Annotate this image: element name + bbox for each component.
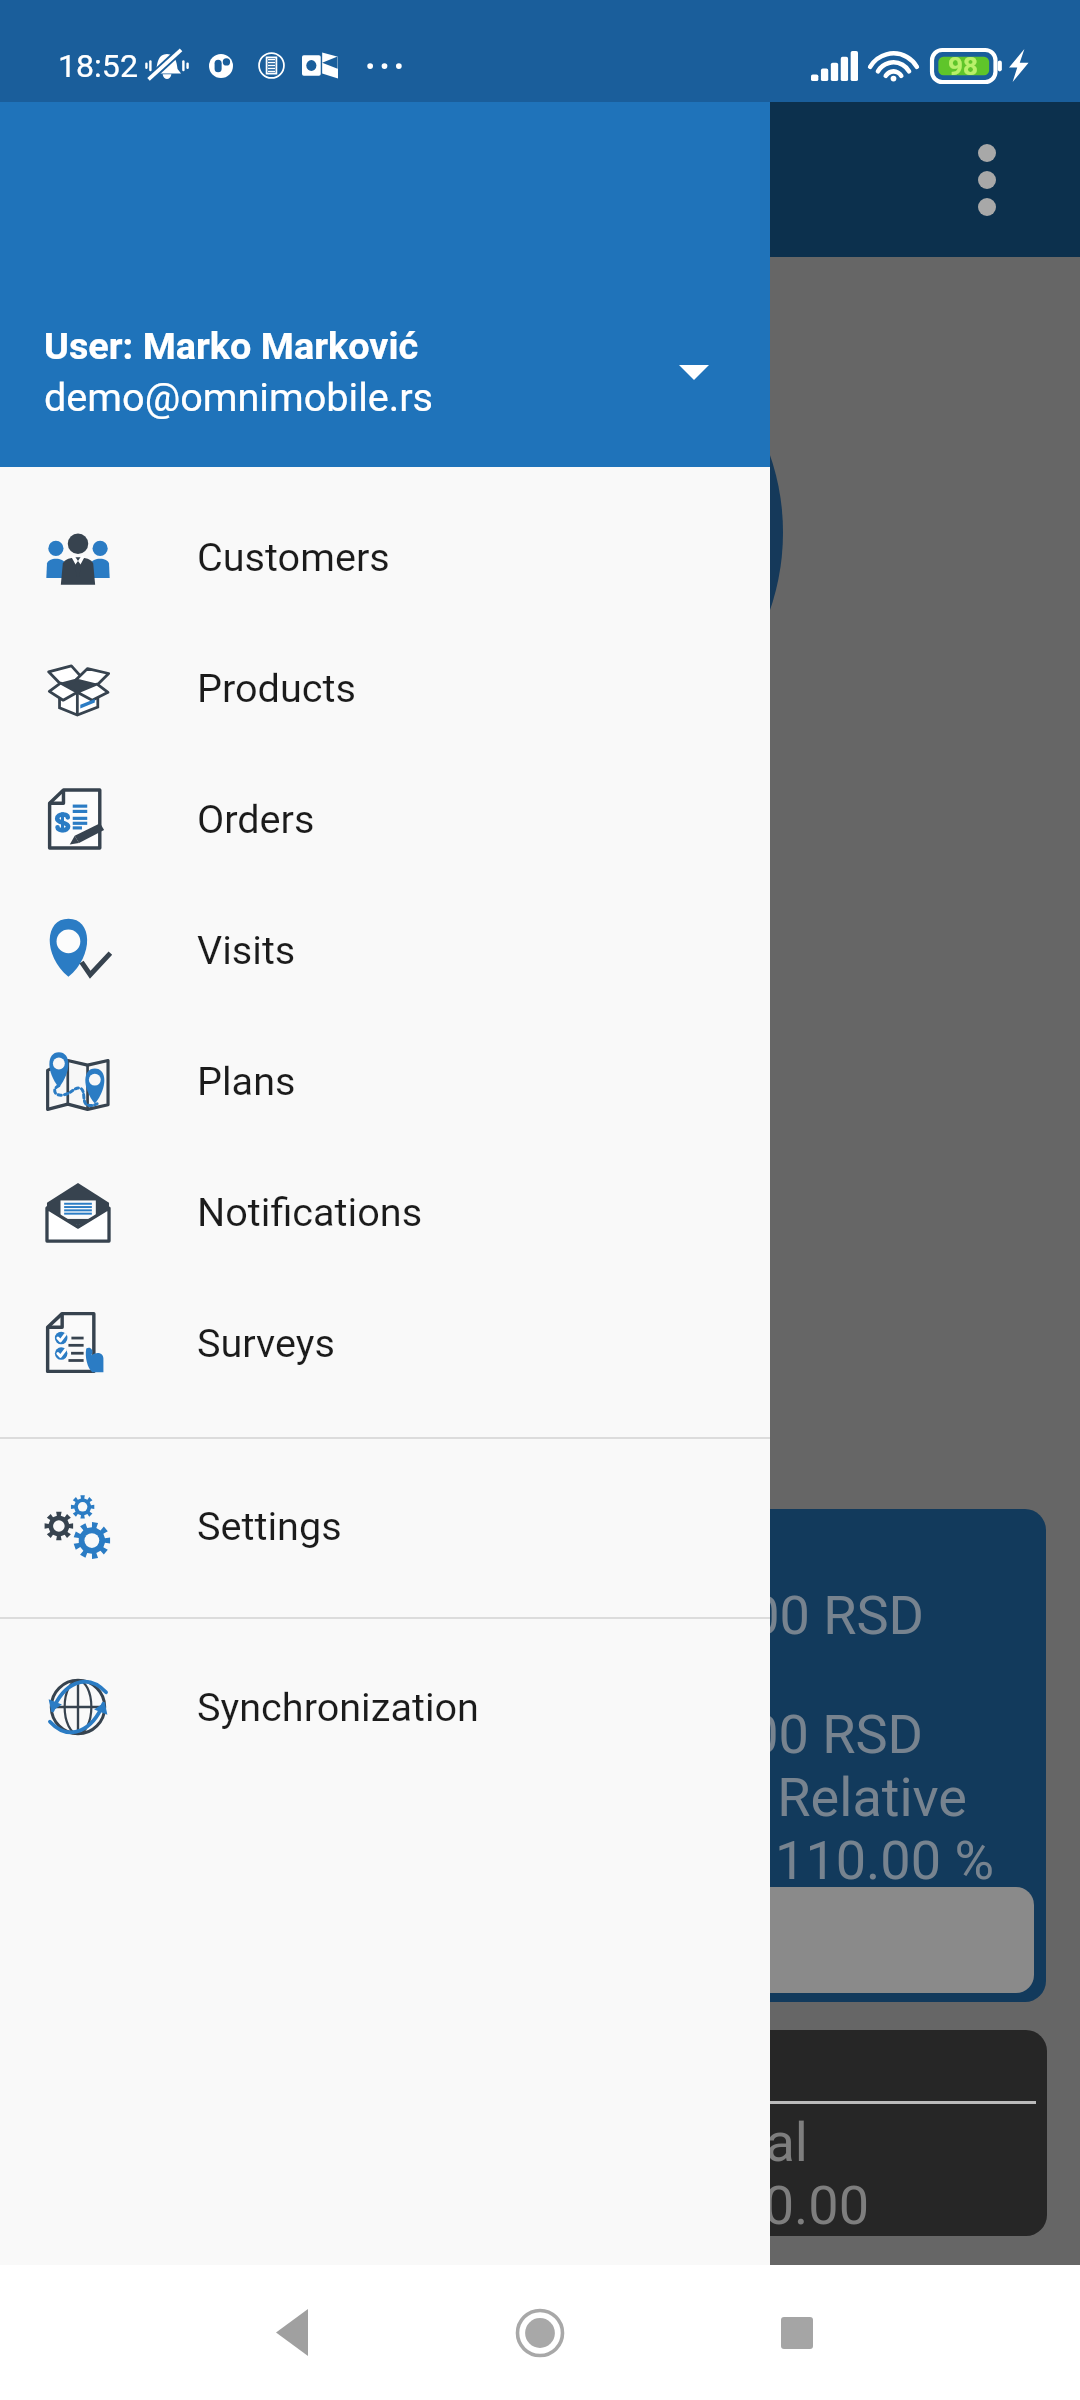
staticText: Relative: [33, 1766, 967, 1829]
staticText: Visits: [197, 927, 296, 973]
button[interactable]: More options: [918, 111, 1056, 249]
staticText: User: Marko Marković: [44, 324, 419, 368]
button[interactable]: Orders: [0, 753, 770, 884]
button[interactable]: Plans: [0, 1015, 770, 1146]
staticText: 1,000.00 RSD: [33, 1584, 924, 1647]
staticText: Total: [33, 2111, 808, 2174]
button[interactable]: Visits: [0, 884, 770, 1015]
button[interactable]: Synchronization: [0, 1641, 770, 1772]
staticText: Synchronization: [197, 1684, 479, 1730]
staticText: Customers: [197, 534, 390, 580]
staticText: Surveys: [197, 1320, 335, 1366]
button[interactable]: Back: [247, 2283, 337, 2382]
button[interactable]: Recents: [752, 2283, 842, 2382]
staticText: Notifications: [197, 1189, 423, 1235]
button[interactable]: Notifications: [0, 1146, 770, 1277]
staticText: Settings: [197, 1503, 342, 1549]
button[interactable]: Settings: [0, 1460, 770, 1591]
button[interactable]: User: Marko Marković: [0, 0, 770, 467]
staticText: 1,100.00 RSD: [33, 1703, 923, 1766]
staticText: Orders: [197, 796, 315, 842]
staticText: Products: [197, 665, 356, 711]
staticText: 110.00 %: [33, 1829, 994, 1892]
button[interactable]: Surveys: [0, 1277, 770, 1408]
button[interactable]: Home: [492, 2283, 588, 2382]
staticText: 98: [948, 51, 978, 82]
staticText: demo@omnimobile.rs: [44, 374, 434, 420]
button[interactable]: Customers: [0, 491, 770, 622]
staticText: 18:52: [58, 47, 138, 85]
staticText: 0.00: [33, 2174, 869, 2236]
button[interactable]: Products: [0, 622, 770, 753]
staticText: Plans: [197, 1058, 296, 1104]
